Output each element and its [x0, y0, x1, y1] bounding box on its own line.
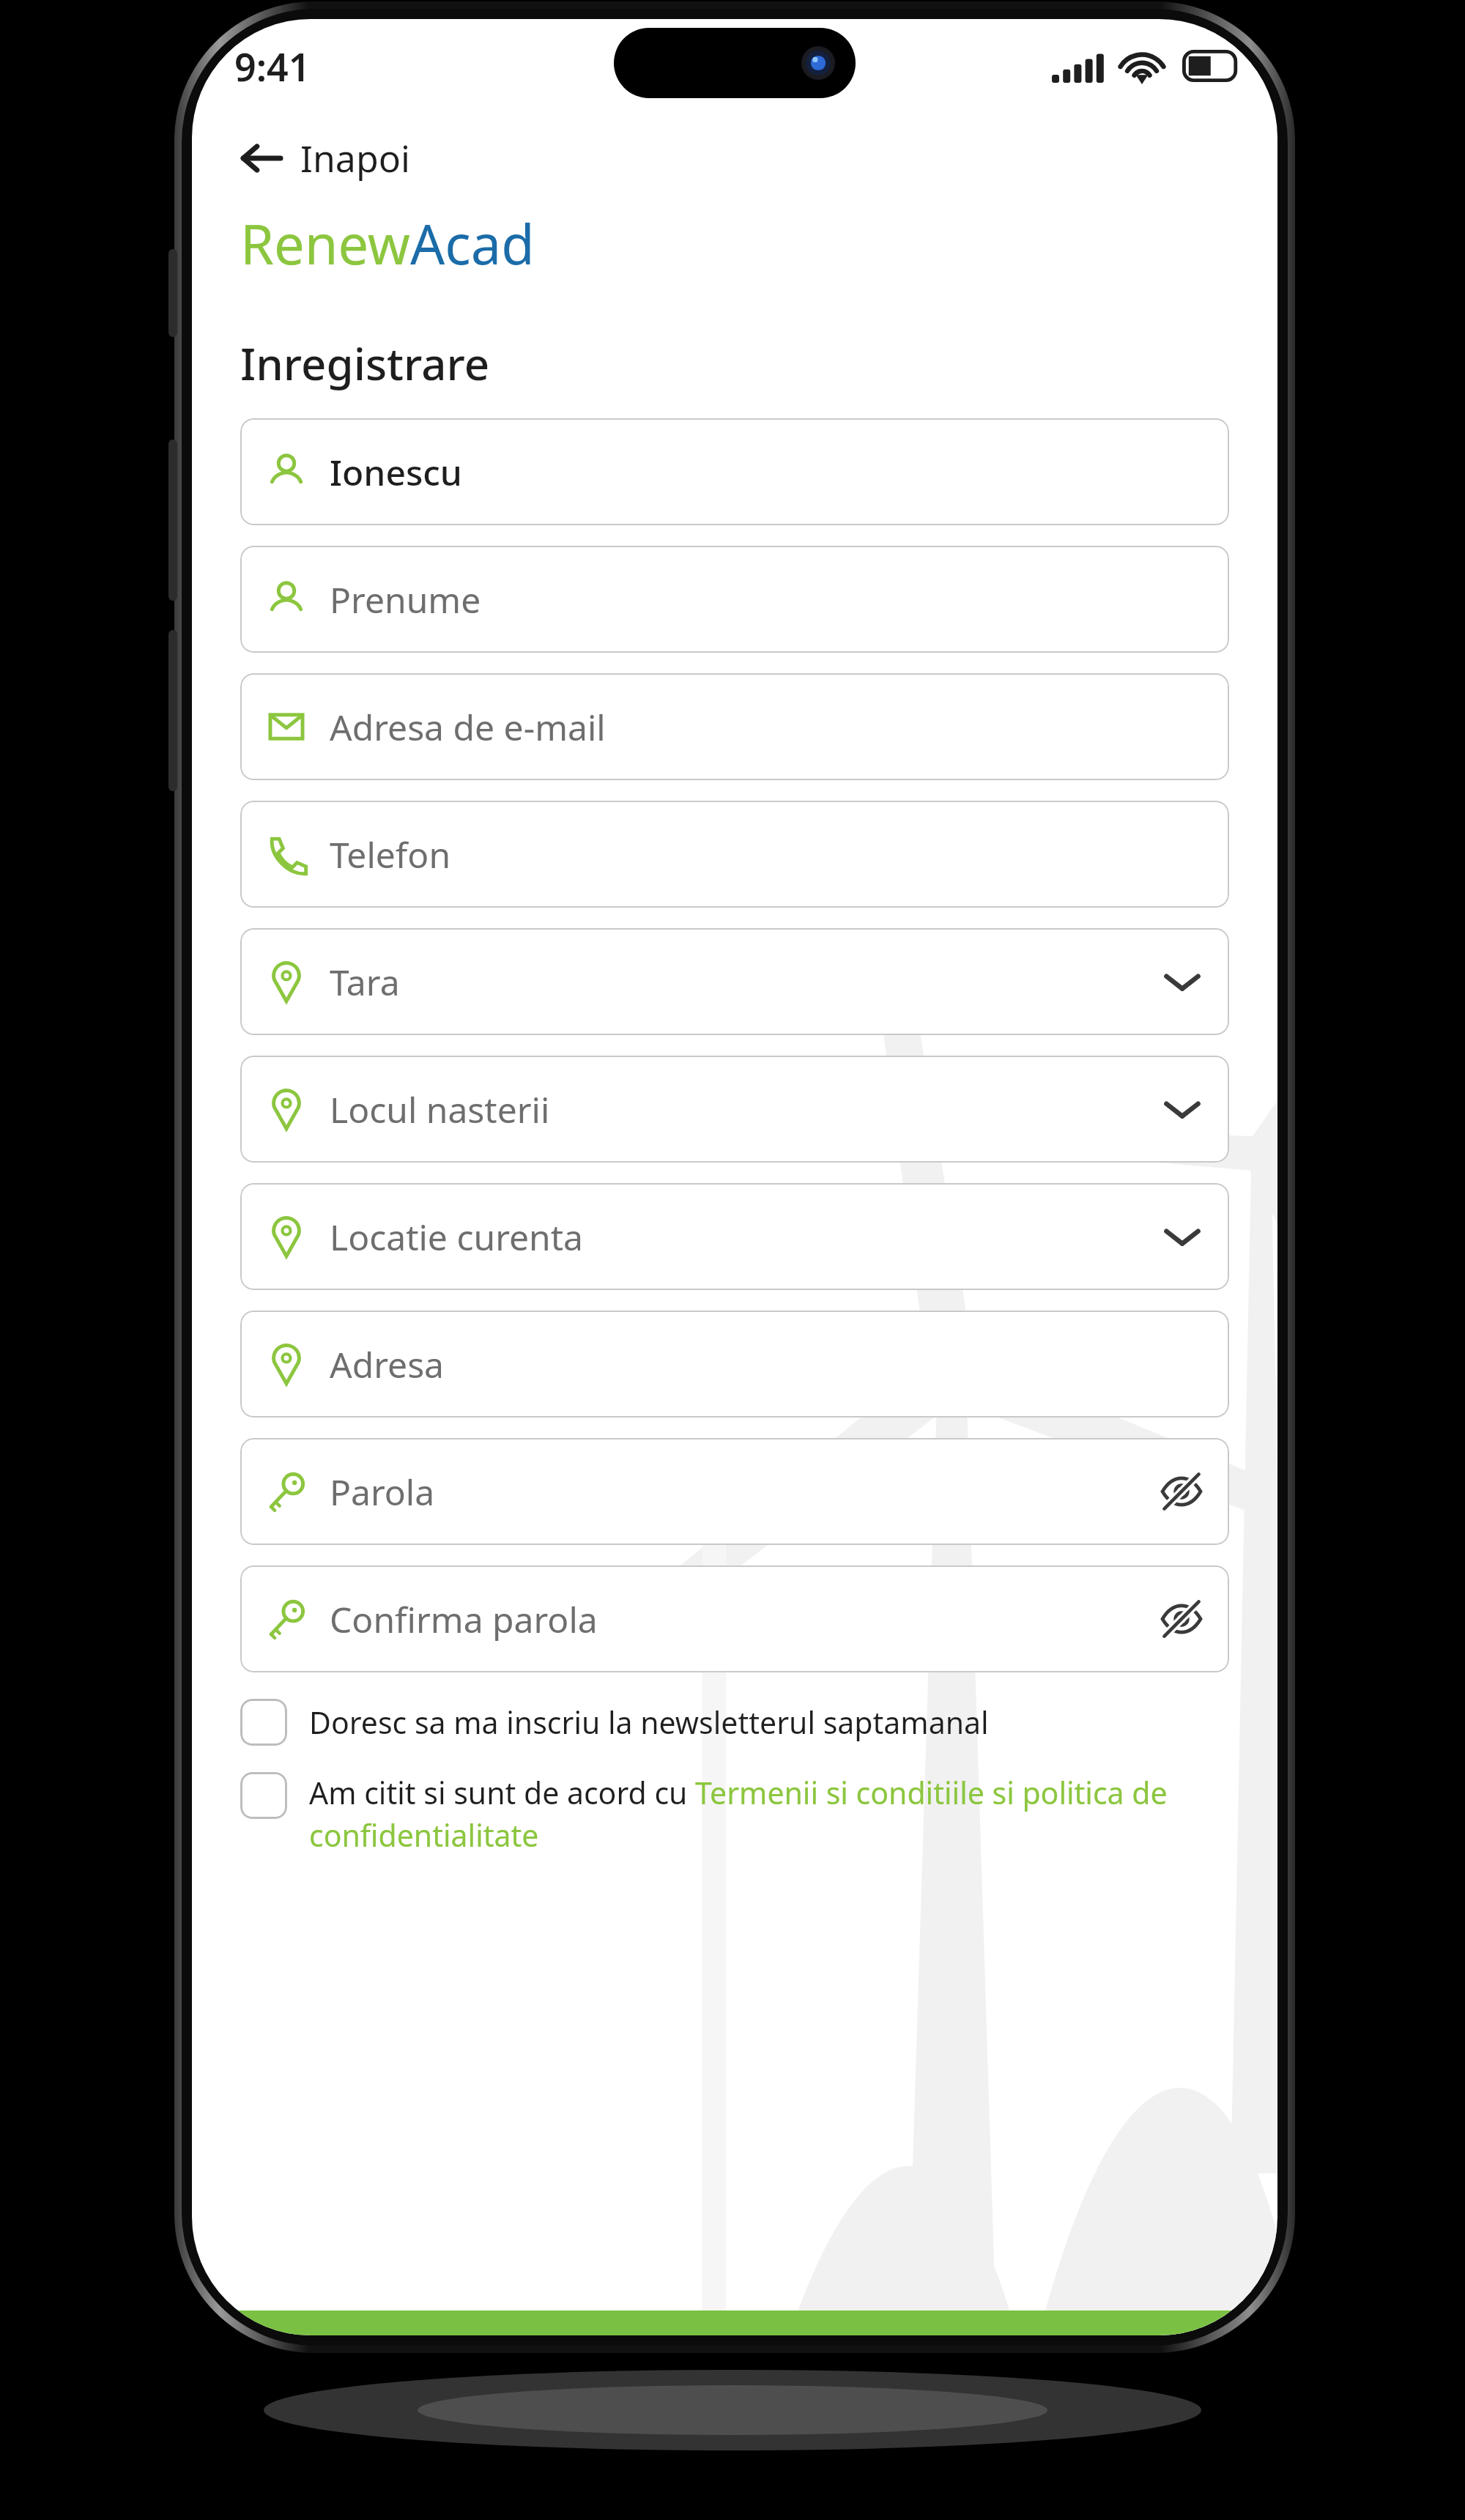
button[interactable]: Confirma parola	[240, 1565, 1229, 1672]
staticText: Telefon	[330, 831, 1204, 878]
staticText: Am citit si sunt de acord cu Termenii si…	[309, 1772, 1229, 1856]
button[interactable]: Parola	[240, 1438, 1229, 1545]
button[interactable]: Toggle checkbox	[240, 1699, 287, 1746]
other: Open Locul nasterii list	[1160, 1087, 1204, 1131]
button[interactable]: Toggle checkbox	[240, 1694, 1229, 1750]
button[interactable]: Telefon	[240, 801, 1229, 908]
button[interactable]: Tara	[240, 928, 1229, 1035]
staticText: Locatie curenta	[330, 1213, 1160, 1261]
staticText: Inapoi	[300, 133, 410, 183]
staticText: Adresa	[330, 1341, 1204, 1388]
button[interactable]: Prenume	[240, 546, 1229, 653]
other: Show password	[1159, 1596, 1204, 1642]
button[interactable]: Ionescu	[240, 418, 1229, 525]
button[interactable]: Locatie curenta	[240, 1183, 1229, 1290]
button[interactable]: Adresa de e-mail	[240, 673, 1229, 780]
button[interactable]: Toggle checkbox	[240, 1772, 287, 1819]
staticText: Adresa de e-mail	[330, 703, 1204, 751]
staticText: Tara	[330, 958, 1160, 1006]
staticText: Ionescu	[330, 448, 1204, 496]
staticText: Locul nasterii	[330, 1086, 1160, 1133]
staticText: Confirma parola	[330, 1596, 1159, 1643]
staticText: RenewAcad	[240, 207, 535, 281]
staticText: Prenume	[330, 576, 1204, 623]
button[interactable]: Back	[233, 126, 416, 190]
other: Back	[239, 136, 284, 181]
button[interactable]: Locul nasterii	[240, 1056, 1229, 1163]
button[interactable]: Toggle checkbox	[240, 1768, 1229, 1860]
staticText: 9:41	[234, 40, 311, 92]
staticText: Parola	[330, 1468, 1159, 1516]
staticText: Doresc sa ma inscriu la newsletterul sap…	[309, 1702, 989, 1743]
staticText: Inregistrare	[240, 333, 490, 393]
button[interactable]: Adresa	[240, 1311, 1229, 1417]
other: Open Locatie curenta list	[1160, 1215, 1204, 1259]
other: Show password	[1159, 1469, 1204, 1514]
other: Open Tara list	[1160, 960, 1204, 1004]
